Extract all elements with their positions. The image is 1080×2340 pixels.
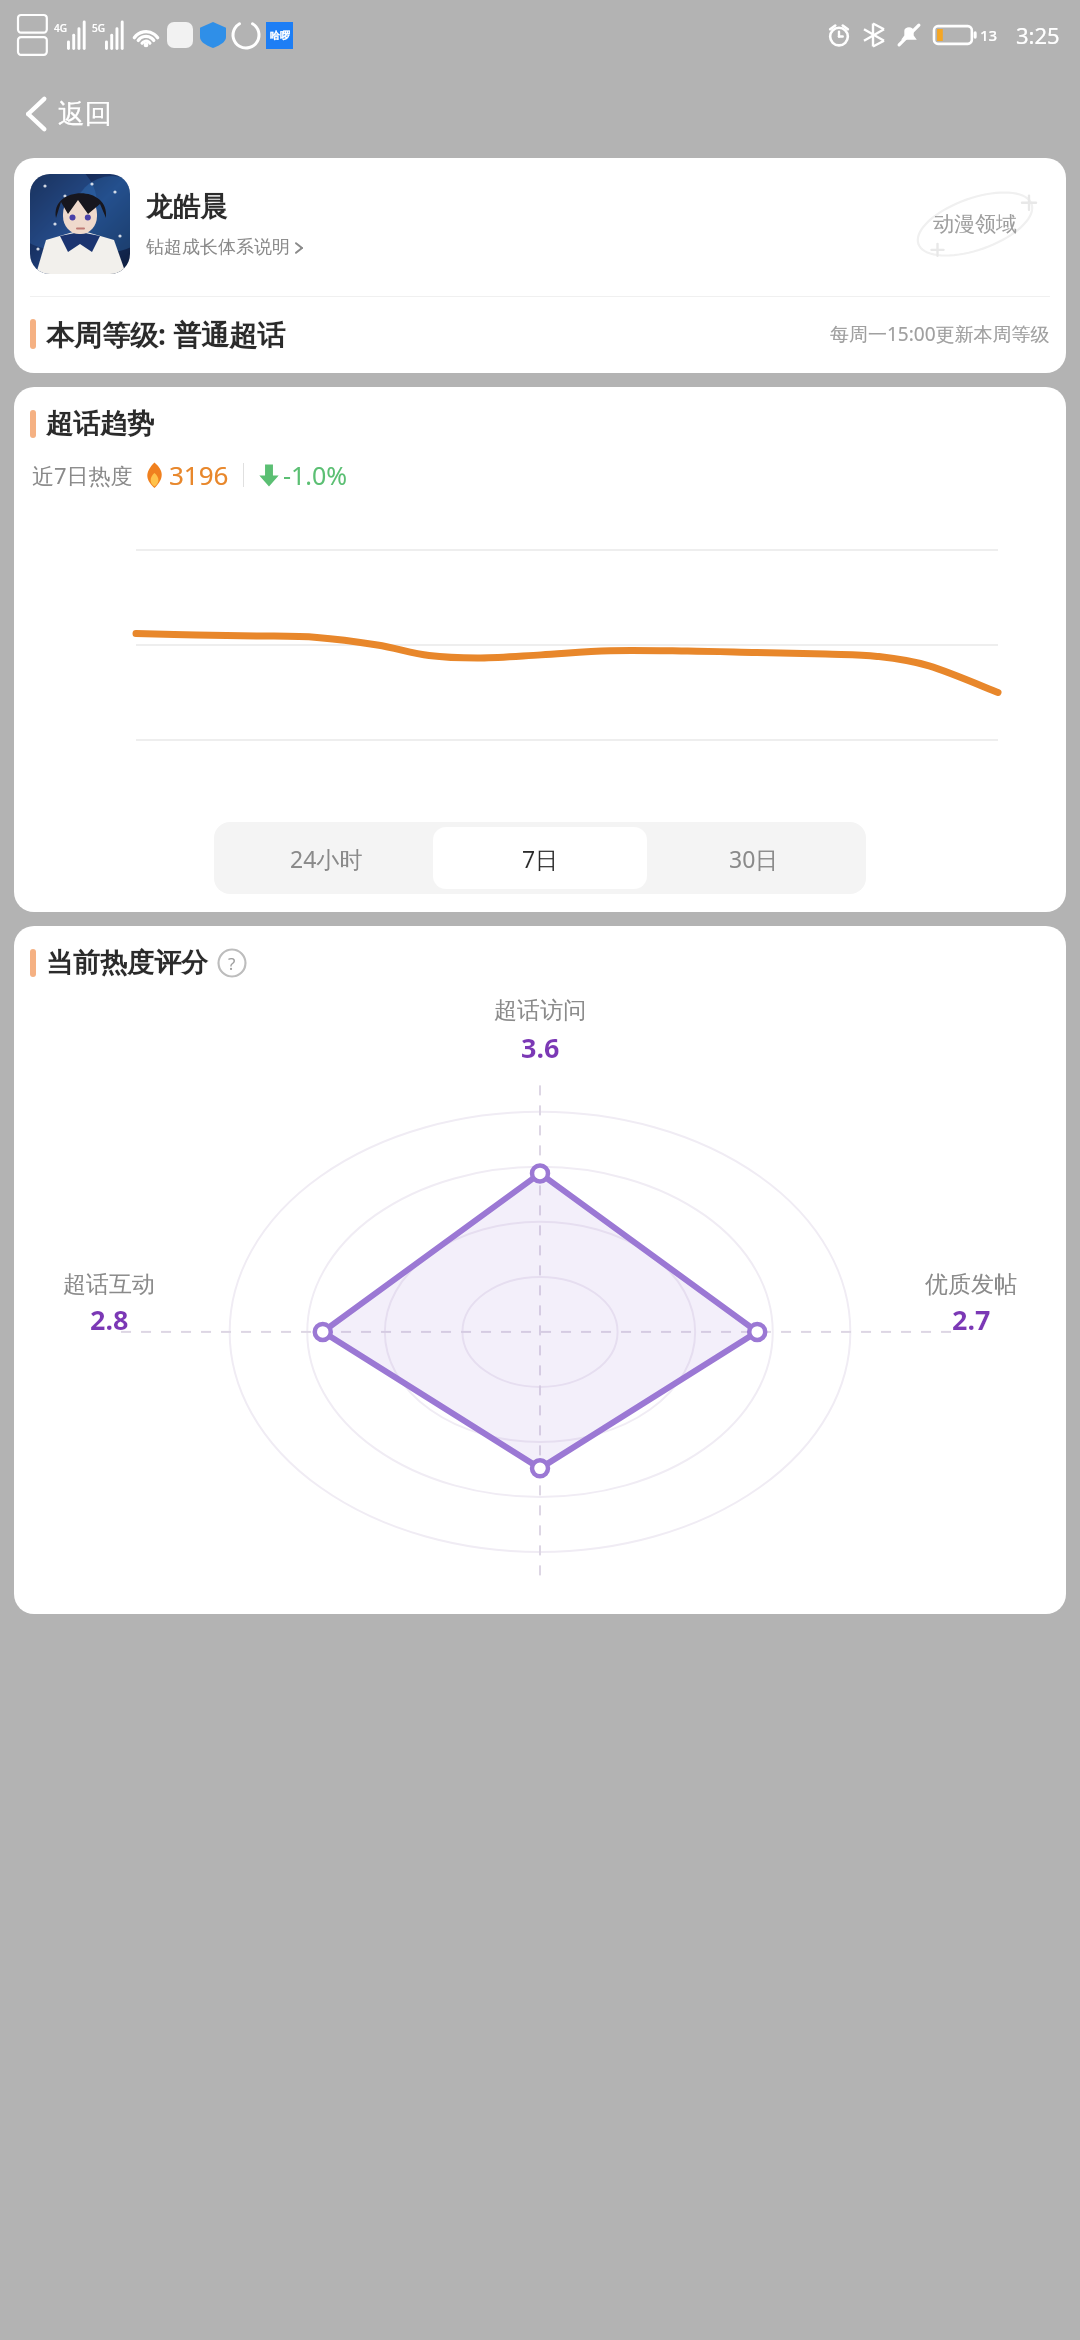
staticText: 哈啰 (270, 29, 290, 42)
button[interactable]: 帮助说明 (217, 948, 247, 978)
staticText: 2.7 (952, 1301, 991, 1338)
staticText: 4G (54, 21, 67, 35)
staticText: 动漫领域 (933, 211, 1017, 237)
staticText: 3.6 (521, 1029, 560, 1066)
staticText: 超话趋势 (46, 407, 154, 441)
staticText: 返回 (58, 97, 112, 131)
button[interactable]: 7日 (433, 827, 647, 889)
staticText: 2.8 (90, 1301, 129, 1338)
button[interactable]: 30日 (647, 827, 861, 889)
staticText: 13 (980, 25, 998, 45)
staticText: 近7日热度 (32, 460, 133, 490)
staticText: 30日 (729, 843, 779, 874)
staticText: 3:25 (1016, 20, 1060, 50)
staticText: 每周一15:00更新本周等级 (830, 321, 1050, 347)
staticText: ? (228, 952, 236, 975)
staticText: 24小时 (290, 843, 363, 874)
staticText: 3196 (169, 457, 229, 492)
staticText: 龙皓晨 (146, 190, 227, 224)
staticText: -1.0% (283, 458, 348, 492)
staticText: 本周等级: 普通超话 (46, 315, 286, 353)
staticText: 5G (92, 21, 105, 35)
staticText: 超话访问 (494, 996, 586, 1025)
staticText: 优质发帖 (916, 1270, 1026, 1299)
staticText: 当前热度评分 (46, 946, 208, 980)
button[interactable]: 返回 (14, 89, 122, 139)
button[interactable]: 24小时 (219, 827, 433, 889)
staticText: 钻超成长体系说明 (146, 236, 290, 259)
staticText: 7日 (522, 843, 559, 874)
button[interactable]: 钻超成长体系说明 (146, 236, 304, 259)
staticText: 超话互动 (54, 1270, 164, 1299)
